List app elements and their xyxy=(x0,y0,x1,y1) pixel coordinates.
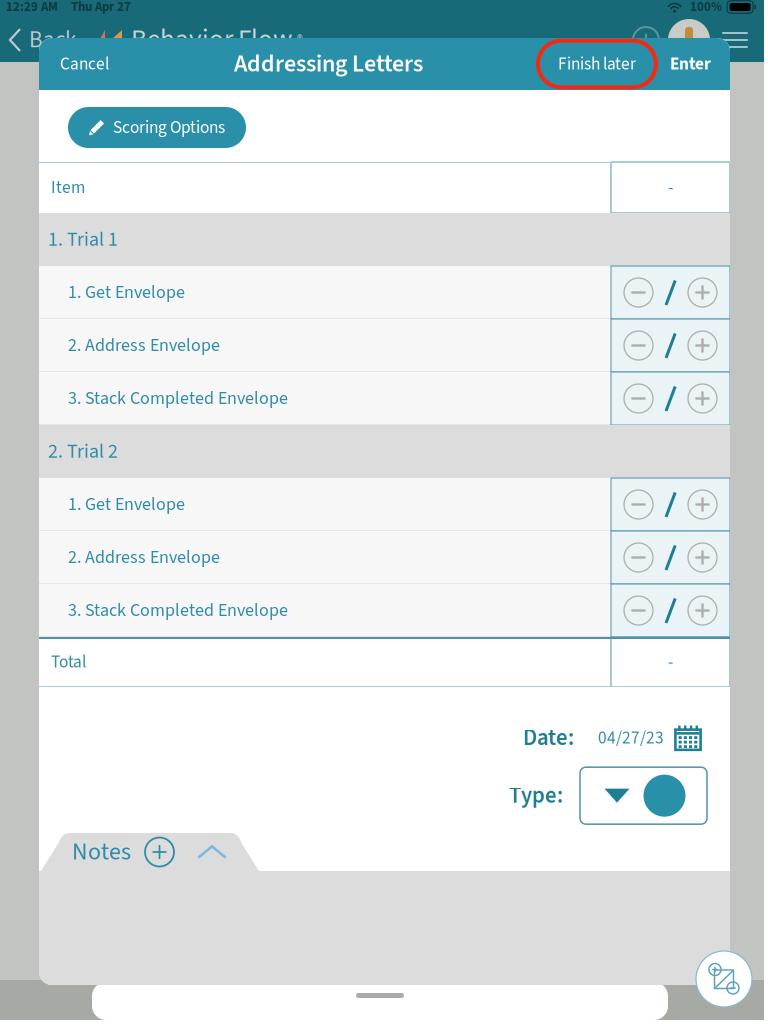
staticText: 2. Address Envelope xyxy=(68,333,220,358)
button[interactable]: Notes xyxy=(41,833,259,871)
staticText: ® xyxy=(297,31,302,49)
button[interactable]: Score stepper xyxy=(611,266,730,319)
button[interactable]: Enter xyxy=(662,38,730,90)
staticText: Notes xyxy=(72,835,131,869)
staticText: 1. Trial 1 xyxy=(48,225,118,254)
staticText: 2. Trial 2 xyxy=(48,437,118,466)
staticText: 3. Stack Completed Envelope xyxy=(68,598,288,623)
button[interactable]: 3. Stack Completed Envelope xyxy=(39,372,611,425)
staticText: Scoring Options xyxy=(113,115,225,140)
staticText: Back xyxy=(29,24,76,56)
button[interactable]: Finish later xyxy=(538,41,656,87)
staticText: 12:29 AM xyxy=(6,0,58,16)
button[interactable]: Scoring Options xyxy=(68,107,246,148)
staticText: 1. Get Envelope xyxy=(68,280,185,305)
button[interactable]: 2. Address Envelope xyxy=(39,531,611,584)
staticText: Finish later xyxy=(558,52,636,76)
staticText: Date: xyxy=(523,722,574,754)
staticText: Thu Apr 27 xyxy=(71,0,131,16)
staticText: Enter xyxy=(670,52,711,76)
staticText: 1. Get Envelope xyxy=(68,492,185,517)
staticText: Type: xyxy=(509,779,563,812)
staticText: 2. Address Envelope xyxy=(68,545,220,570)
staticText: 04/27/23 xyxy=(598,726,664,750)
staticText: Cancel xyxy=(60,52,109,76)
button[interactable]: 2. Address Envelope xyxy=(39,319,611,372)
button[interactable]: Score stepper xyxy=(611,584,730,637)
button[interactable]: Score stepper xyxy=(611,531,730,584)
staticText: Addressing Letters xyxy=(234,47,423,81)
button[interactable]: Resize xyxy=(695,950,753,1008)
button[interactable]: Type picker xyxy=(580,767,707,824)
button[interactable]: 1. Get Envelope xyxy=(39,478,611,531)
button[interactable]: Cancel xyxy=(39,38,119,90)
staticText: Behavior Flow xyxy=(131,21,292,59)
button[interactable]: 04/27/23 xyxy=(598,724,702,752)
staticText: - xyxy=(668,175,673,200)
staticText: Item xyxy=(51,175,85,200)
button[interactable]: Score stepper xyxy=(611,372,730,425)
button[interactable]: Score stepper xyxy=(611,319,730,372)
staticText: Total xyxy=(51,650,86,674)
staticText: 100% xyxy=(690,0,722,16)
button[interactable]: Score stepper xyxy=(611,478,730,531)
button[interactable]: 1. Get Envelope xyxy=(39,266,611,319)
staticText: - xyxy=(668,650,673,674)
staticText: 3. Stack Completed Envelope xyxy=(68,386,288,411)
button[interactable]: 3. Stack Completed Envelope xyxy=(39,584,611,637)
